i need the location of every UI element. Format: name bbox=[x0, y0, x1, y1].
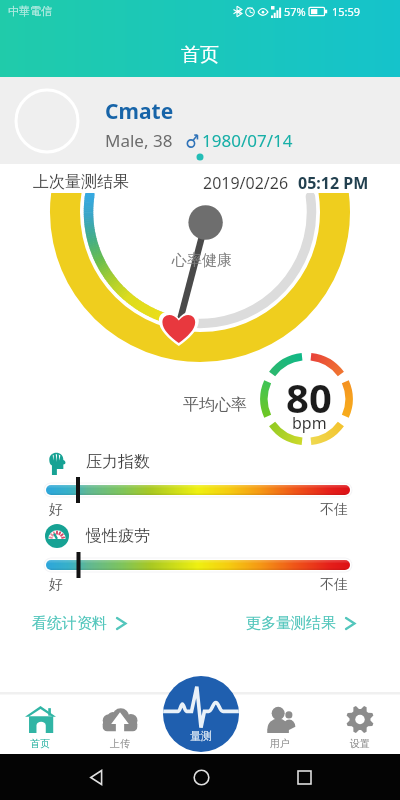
button[interactable]: 设置 bbox=[320, 694, 400, 754]
staticText: 看统计资料 bbox=[32, 614, 107, 633]
button[interactable]: 用户 bbox=[240, 694, 320, 754]
staticText: 上次量测结果 bbox=[33, 172, 129, 192]
button[interactable]: 首页 bbox=[0, 694, 80, 754]
staticText: 好 bbox=[49, 576, 63, 594]
staticText: 压力指数 bbox=[86, 452, 150, 472]
staticText: 心率健康 bbox=[172, 251, 232, 270]
staticText: 15:59 bbox=[332, 4, 361, 19]
staticText: 57% bbox=[284, 4, 306, 19]
staticText: 更多量测结果 bbox=[246, 614, 336, 633]
staticText: 量测 bbox=[190, 729, 212, 743]
staticText: 平均心率 bbox=[183, 395, 247, 415]
button[interactable]: 看统计资料 bbox=[29, 611, 131, 636]
button[interactable]: 量测 bbox=[163, 676, 239, 752]
staticText: 05:12 PM bbox=[298, 172, 369, 194]
button[interactable]: 更多量测结果 bbox=[243, 611, 360, 636]
staticText: 1980/07/14 bbox=[202, 129, 293, 152]
staticText: 中華電信 bbox=[8, 4, 52, 18]
staticText: 2019/02/26 bbox=[203, 172, 289, 194]
staticText: 80 bbox=[286, 370, 332, 424]
staticText: 慢性疲劳 bbox=[86, 526, 150, 546]
staticText: 设置 bbox=[350, 737, 370, 750]
staticText: 首页 bbox=[181, 43, 219, 67]
button[interactable]: 上传 bbox=[80, 694, 160, 754]
staticText: Male, 38 bbox=[105, 129, 173, 152]
staticText: 用户 bbox=[270, 737, 290, 750]
staticText: 不佳 bbox=[320, 501, 348, 519]
staticText: 首页 bbox=[30, 737, 50, 750]
staticText: Cmate bbox=[105, 97, 174, 126]
staticText: bpm bbox=[292, 412, 327, 434]
staticText: 好 bbox=[49, 501, 63, 519]
staticText: 不佳 bbox=[320, 576, 348, 594]
staticText: 上传 bbox=[110, 737, 130, 750]
